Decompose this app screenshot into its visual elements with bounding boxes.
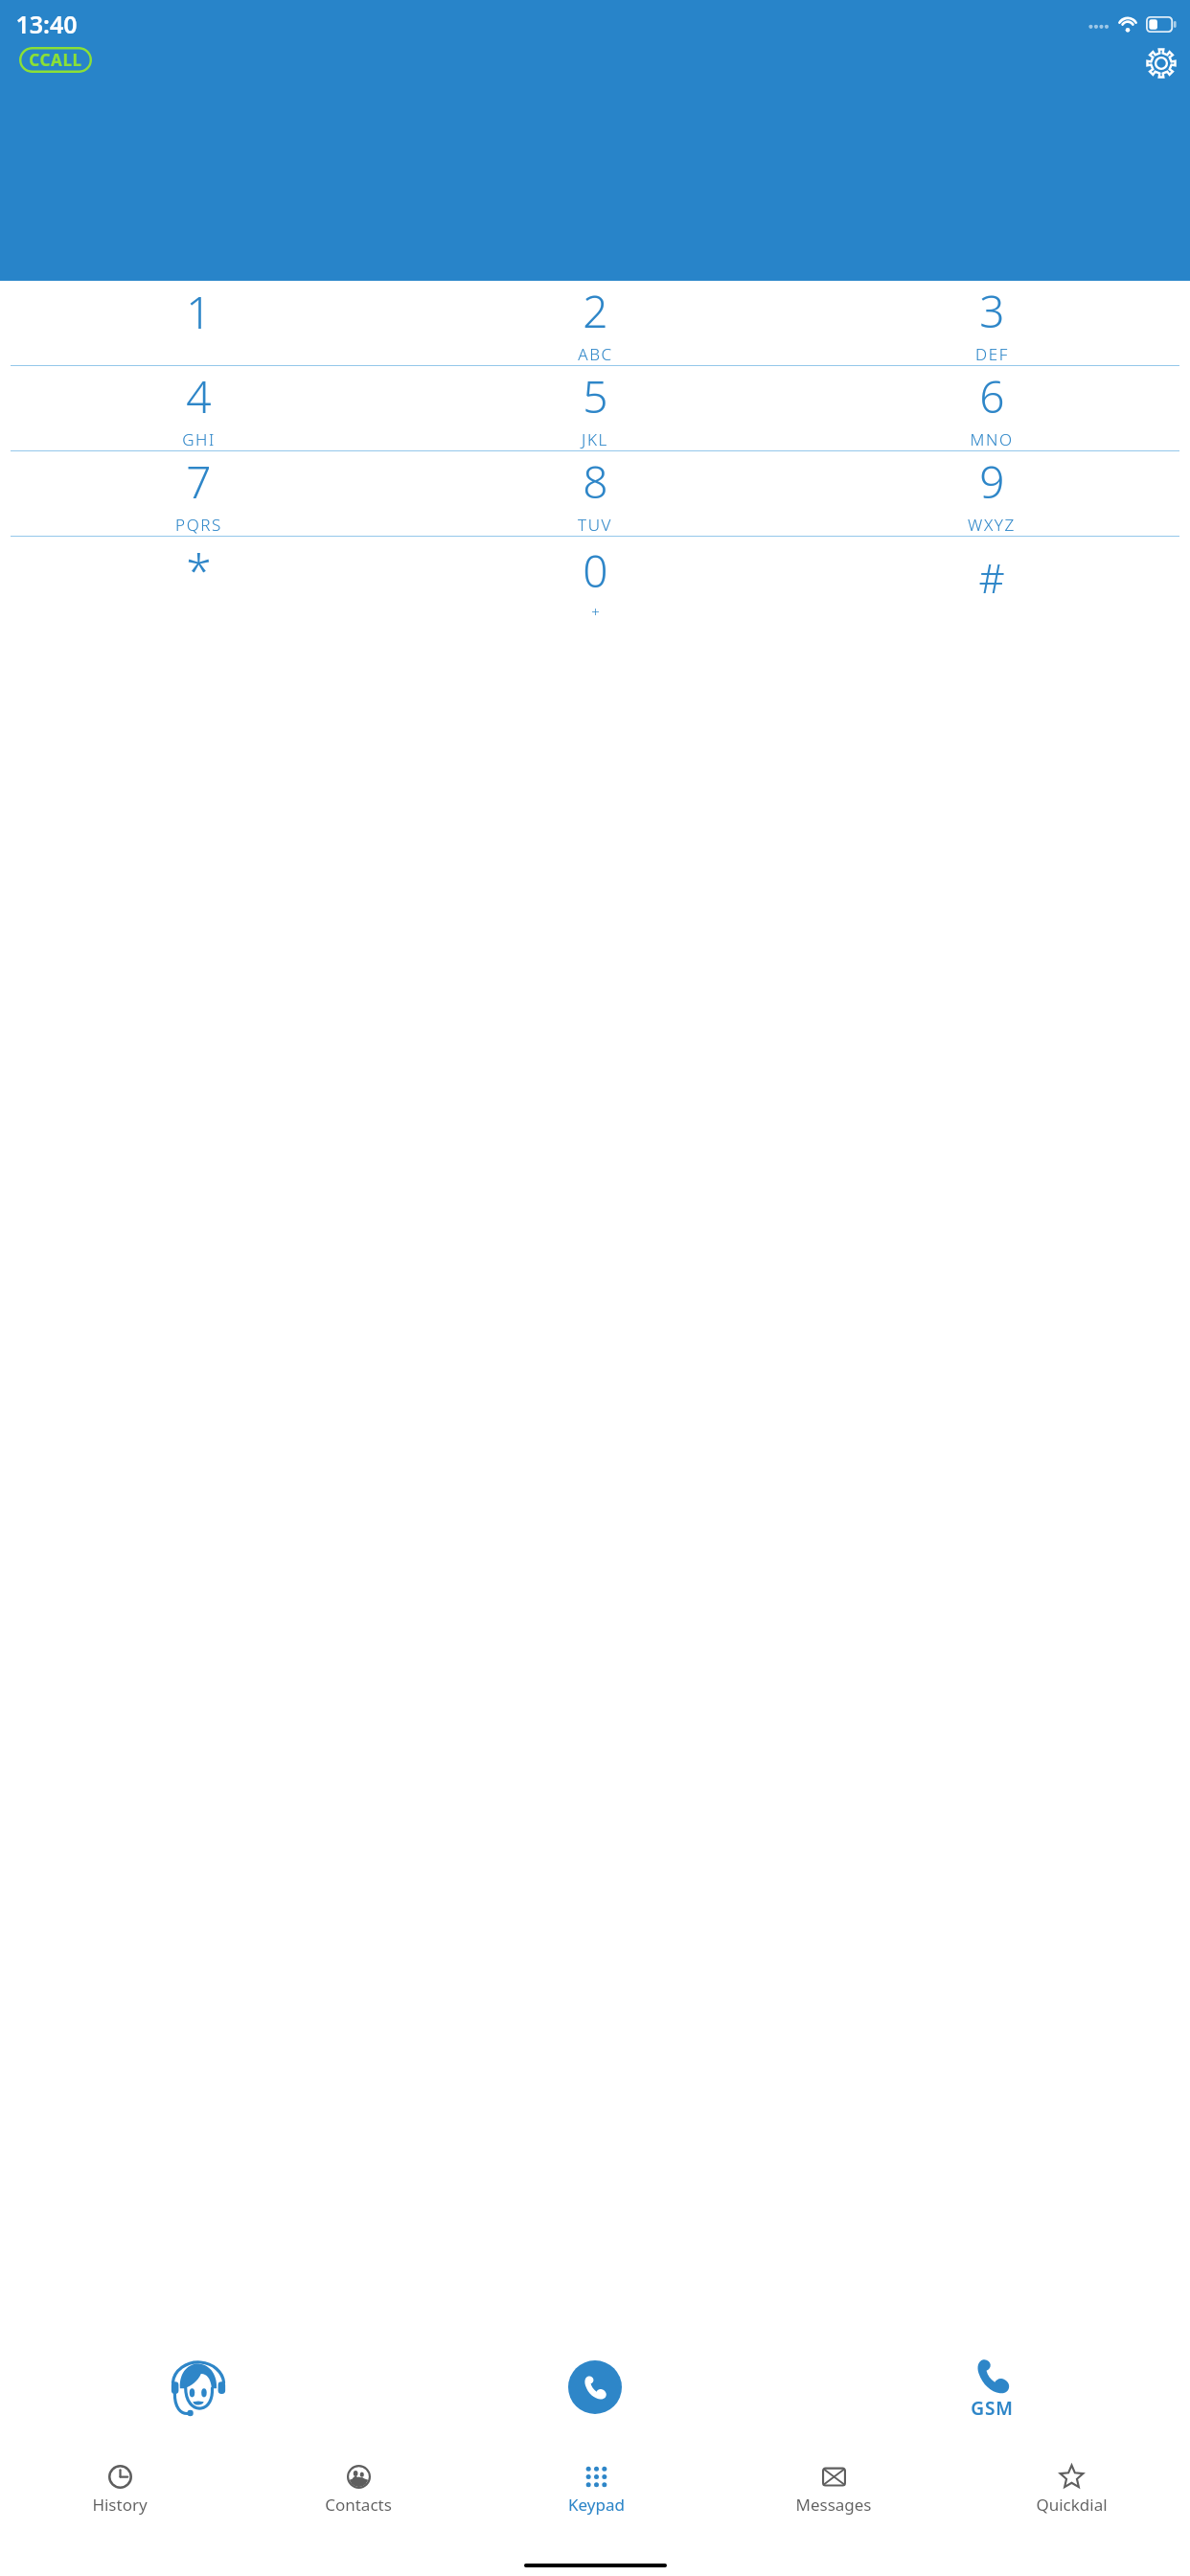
staticText: 13:40	[15, 8, 78, 40]
button[interactable]: 0	[397, 537, 793, 625]
button[interactable]: 1	[0, 281, 397, 365]
staticText: 6	[979, 366, 1005, 426]
staticText: History	[92, 2494, 148, 2516]
button[interactable]: Settings	[1140, 42, 1182, 84]
button[interactable]: 8	[397, 451, 793, 536]
staticText: 0	[583, 540, 608, 601]
staticText: Keypad	[568, 2494, 625, 2516]
button[interactable]: 7	[0, 451, 397, 536]
staticText: Contacts	[325, 2494, 392, 2516]
button[interactable]: Messages	[715, 2453, 952, 2547]
button[interactable]: Call operator	[0, 2334, 397, 2440]
staticText: TUV	[578, 514, 612, 536]
button[interactable]: 6	[793, 366, 1190, 450]
button[interactable]: 5	[397, 366, 793, 450]
button[interactable]: CCALL	[18, 47, 93, 73]
button[interactable]: *	[0, 537, 397, 625]
staticText: 2	[583, 281, 608, 341]
staticText: 7	[186, 451, 212, 512]
staticText: 4	[186, 366, 212, 426]
staticText: WXYZ	[968, 514, 1016, 536]
staticText: CCALL	[29, 49, 82, 71]
button[interactable]: 3	[793, 281, 1190, 365]
staticText: 9	[979, 451, 1005, 512]
button[interactable]: 2	[397, 281, 793, 365]
staticText: PQRS	[175, 514, 222, 536]
staticText: Messages	[795, 2494, 872, 2516]
staticText: 8	[583, 451, 608, 512]
staticText: MNO	[970, 428, 1014, 450]
staticText: +	[591, 602, 600, 621]
staticText: GHI	[182, 428, 216, 450]
staticText: DEF	[975, 343, 1009, 365]
button[interactable]: 4	[0, 366, 397, 450]
button[interactable]: #	[793, 537, 1190, 625]
staticText: GSM	[971, 2396, 1014, 2421]
staticText: Quickdial	[1036, 2494, 1108, 2516]
button[interactable]: Quickdial	[952, 2453, 1190, 2547]
button[interactable]: GSM	[793, 2334, 1190, 2440]
button[interactable]: 9	[793, 451, 1190, 536]
staticText: 1	[186, 282, 212, 342]
button[interactable]: History	[0, 2453, 239, 2547]
staticText: JKL	[582, 428, 608, 450]
staticText: 3	[979, 281, 1005, 341]
button[interactable]: Call	[568, 2360, 622, 2414]
staticText: 5	[583, 366, 608, 426]
staticText: ABC	[578, 343, 613, 365]
staticText: *	[186, 539, 212, 601]
button[interactable]: Contacts	[239, 2453, 477, 2547]
staticText: #	[978, 550, 1005, 605]
button[interactable]: Keypad	[477, 2453, 715, 2547]
